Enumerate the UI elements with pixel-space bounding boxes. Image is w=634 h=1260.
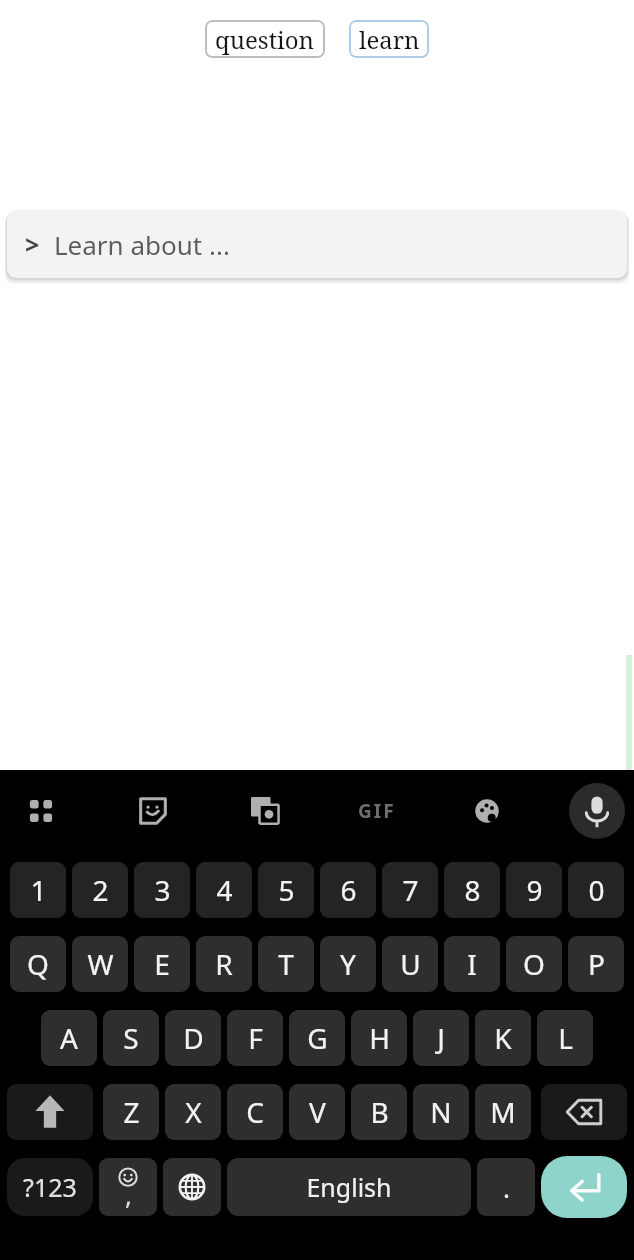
staticText: F (248, 1019, 263, 1057)
button[interactable]: 2 (72, 862, 128, 918)
button[interactable]: 4 (196, 862, 252, 918)
staticText: learn (359, 23, 420, 56)
staticText: C (246, 1093, 264, 1131)
staticText: I (467, 945, 477, 983)
button[interactable]: Z (103, 1084, 159, 1140)
button[interactable]: 3 (134, 862, 190, 918)
button[interactable]: G (289, 1010, 345, 1066)
staticText: > (25, 227, 40, 261)
staticText: GIF (358, 798, 396, 824)
button[interactable]: W (72, 936, 128, 992)
button[interactable]: 8 (444, 862, 500, 918)
staticText: H (369, 1019, 390, 1057)
staticText: J (437, 1019, 445, 1057)
button[interactable]: 6 (320, 862, 376, 918)
staticText: 2 (92, 871, 109, 909)
staticText: Z (123, 1093, 140, 1131)
button[interactable]: learn (349, 20, 429, 58)
button[interactable]: Y (320, 936, 376, 992)
button[interactable]: . (477, 1158, 535, 1216)
staticText: question (215, 23, 315, 56)
button[interactable]: Backspace (541, 1084, 627, 1140)
staticText: K (494, 1019, 512, 1057)
button[interactable]: A (41, 1010, 97, 1066)
button[interactable]: L (537, 1010, 593, 1066)
button[interactable]: Translate (236, 770, 294, 852)
button[interactable]: E (134, 936, 190, 992)
button[interactable]: 5 (258, 862, 314, 918)
staticText: 4 (216, 871, 233, 909)
button[interactable]: question (205, 20, 325, 58)
staticText: ?123 (23, 1170, 77, 1204)
button[interactable]: 9 (506, 862, 562, 918)
button[interactable]: Q (10, 936, 66, 992)
button[interactable]: H (351, 1010, 407, 1066)
staticText: Y (340, 945, 356, 983)
staticText: Learn about ... (54, 227, 230, 262)
button[interactable]: U (382, 936, 438, 992)
button[interactable]: Enter (541, 1156, 627, 1218)
staticText: T (278, 945, 294, 983)
staticText: B (370, 1093, 389, 1131)
staticText: M (490, 1093, 516, 1131)
staticText: A (60, 1019, 78, 1057)
staticText: P (588, 945, 605, 983)
staticText: O (523, 945, 545, 983)
staticText: N (430, 1093, 452, 1131)
button[interactable]: 7 (382, 862, 438, 918)
button[interactable]: M (475, 1084, 531, 1140)
staticText: 1 (30, 871, 47, 909)
button[interactable]: X (165, 1084, 221, 1140)
button[interactable]: Change keyboard language (163, 1158, 221, 1216)
staticText: 5 (278, 871, 295, 909)
staticText: . (503, 1170, 510, 1205)
button[interactable]: ?123 (7, 1158, 93, 1216)
staticText: 8 (464, 871, 481, 909)
button[interactable]: > (7, 210, 627, 278)
button[interactable]: R (196, 936, 252, 992)
staticText: E (154, 945, 170, 983)
staticText: 9 (526, 871, 543, 909)
staticText: 7 (402, 871, 419, 909)
staticText: U (400, 945, 421, 983)
button[interactable]: Emoji and comma (99, 1158, 157, 1216)
staticText: D (183, 1019, 204, 1057)
button[interactable]: C (227, 1084, 283, 1140)
button[interactable]: 0 (568, 862, 624, 918)
button[interactable]: GIF (348, 770, 406, 852)
staticText: 3 (154, 871, 171, 909)
button[interactable]: K (475, 1010, 531, 1066)
button[interactable]: N (413, 1084, 469, 1140)
staticText: 0 (588, 871, 605, 909)
button[interactable]: Themes (458, 770, 516, 852)
staticText: 6 (340, 871, 357, 909)
button[interactable]: T (258, 936, 314, 992)
staticText: W (87, 945, 114, 983)
button[interactable]: 1 (10, 862, 66, 918)
button[interactable]: Stickers (124, 770, 182, 852)
staticText: X (185, 1093, 202, 1131)
staticText: S (123, 1019, 139, 1057)
button[interactable]: D (165, 1010, 221, 1066)
staticText: Q (27, 945, 49, 983)
button[interactable]: English (227, 1158, 471, 1216)
staticText: R (215, 945, 233, 983)
button[interactable]: Shift (7, 1084, 93, 1140)
staticText: G (307, 1019, 328, 1057)
button[interactable]: S (103, 1010, 159, 1066)
button[interactable]: O (506, 936, 562, 992)
staticText: V (309, 1093, 326, 1131)
button[interactable]: Voice input (569, 783, 625, 839)
button[interactable]: B (351, 1084, 407, 1140)
button[interactable]: V (289, 1084, 345, 1140)
button[interactable]: F (227, 1010, 283, 1066)
staticText: , (125, 1177, 132, 1212)
button[interactable]: I (444, 936, 500, 992)
staticText: L (558, 1019, 573, 1057)
button[interactable]: J (413, 1010, 469, 1066)
button[interactable]: P (568, 936, 624, 992)
button[interactable]: Apps (12, 770, 70, 852)
staticText: English (306, 1170, 392, 1204)
